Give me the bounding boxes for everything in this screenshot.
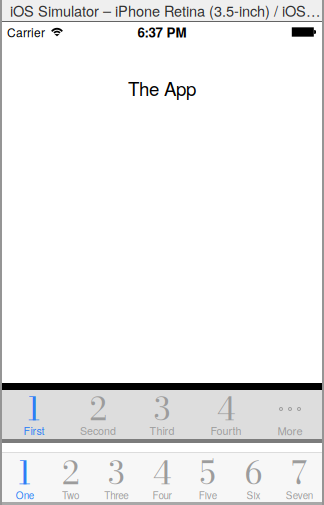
button[interactable]: 2 — [48, 453, 93, 502]
staticText: 2 — [89, 385, 106, 433]
staticText: The App — [128, 75, 196, 101]
staticText: 4 — [216, 385, 235, 433]
staticText: Second — [80, 423, 116, 438]
staticText: Carrier — [7, 23, 45, 41]
button[interactable]: 5 — [185, 453, 231, 502]
staticText: iOS Simulator – iPhone Retina (3.5-inch)… — [10, 0, 321, 21]
staticText: Seven — [286, 488, 313, 502]
staticText: Five — [199, 488, 217, 502]
staticText: Fourth — [210, 423, 241, 438]
button[interactable]: 1 — [2, 390, 66, 439]
staticText: Third — [149, 423, 174, 438]
staticText: More — [277, 423, 302, 438]
button[interactable]: 6 — [231, 453, 276, 502]
staticText: 3 — [154, 385, 170, 433]
staticText: 1 — [18, 449, 32, 497]
staticText: 3 — [108, 449, 124, 497]
button[interactable]: 4 — [139, 453, 185, 502]
staticText: Six — [246, 488, 260, 502]
button[interactable]: 7 — [276, 453, 322, 502]
staticText: Three — [104, 488, 128, 502]
staticText: 6:37 PM — [137, 22, 186, 42]
staticText: 1 — [27, 385, 41, 433]
staticText: One — [16, 488, 34, 502]
staticText: 6 — [244, 449, 262, 497]
button[interactable]: 2 — [66, 390, 130, 439]
button[interactable]: More — [258, 390, 322, 439]
button[interactable]: 3 — [130, 390, 194, 439]
staticText: Two — [62, 488, 79, 502]
button[interactable]: 1 — [2, 453, 48, 502]
button[interactable]: 4 — [194, 390, 258, 439]
staticText: 2 — [62, 449, 79, 497]
button[interactable]: 3 — [93, 453, 139, 502]
staticText: Four — [152, 488, 171, 502]
staticText: 5 — [200, 449, 216, 497]
staticText: 7 — [291, 449, 307, 497]
staticText: First — [23, 423, 44, 438]
staticText: 4 — [152, 449, 171, 497]
